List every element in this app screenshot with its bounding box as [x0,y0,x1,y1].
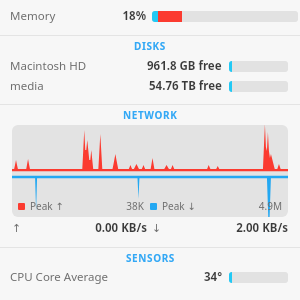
staticText: 2.00 KB/s [162,220,288,236]
staticText: Peak ↑ [30,199,64,213]
staticText: Memory [10,8,110,24]
staticText: CPU Core Average [10,269,204,285]
button[interactable]: ↑ [12,217,288,239]
staticText: NETWORK [123,108,178,122]
staticText: ↓ [152,222,162,235]
staticText: DISKS [134,39,166,53]
staticText: media [10,78,149,94]
staticText: ↑ [12,222,22,235]
button[interactable]: CPU Core Average [0,268,300,286]
staticText: 961.8 GB free [147,58,222,74]
staticText: 38K [64,199,144,213]
staticText: 0.00 KB/s [22,220,147,236]
button[interactable]: Memory [0,6,300,26]
staticText: 54.76 TB free [149,78,222,94]
staticText: Macintosh HD [10,58,147,74]
button[interactable]: Macintosh HD [0,56,300,76]
staticText: Peak ↓ [162,199,196,213]
staticText: 4.9M [196,199,282,213]
button[interactable]: media [0,76,300,96]
button[interactable]: Peak ↑ [12,125,288,217]
staticText: 34° [204,269,223,285]
staticText: SENSORS [126,251,175,265]
staticText: 18% [110,8,146,24]
